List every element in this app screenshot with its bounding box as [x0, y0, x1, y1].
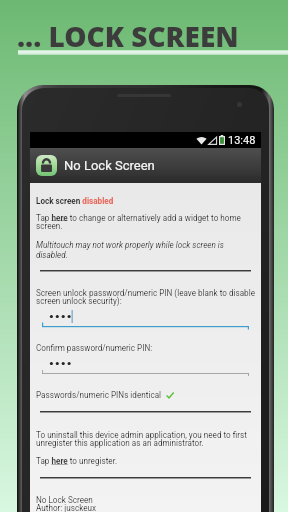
staticText: 13:48	[228, 134, 256, 147]
button[interactable]: Tap here to unregister.	[36, 456, 118, 466]
staticText: Lock screen disabled	[36, 196, 114, 206]
staticText: Passwords/numeric PINs identical	[36, 390, 162, 400]
staticText: No Lock Screen	[36, 495, 93, 505]
staticText: Confirm password/numeric PIN:	[36, 343, 153, 353]
staticText: To uninstall this device admin applicati…	[36, 430, 255, 448]
button[interactable]: Tap here to change or alternatively add …	[36, 213, 255, 231]
staticText: No Lock Screen	[64, 158, 155, 173]
staticText: Author: jusckeux	[36, 503, 97, 512]
staticText: Multitouch may not work properly while l…	[36, 240, 255, 260]
staticText: Screen unlock password/numeric PIN (leav…	[36, 288, 255, 306]
button[interactable]: No Lock Screen	[30, 148, 261, 183]
staticText: ... LOCK SCREEN	[17, 17, 239, 55]
